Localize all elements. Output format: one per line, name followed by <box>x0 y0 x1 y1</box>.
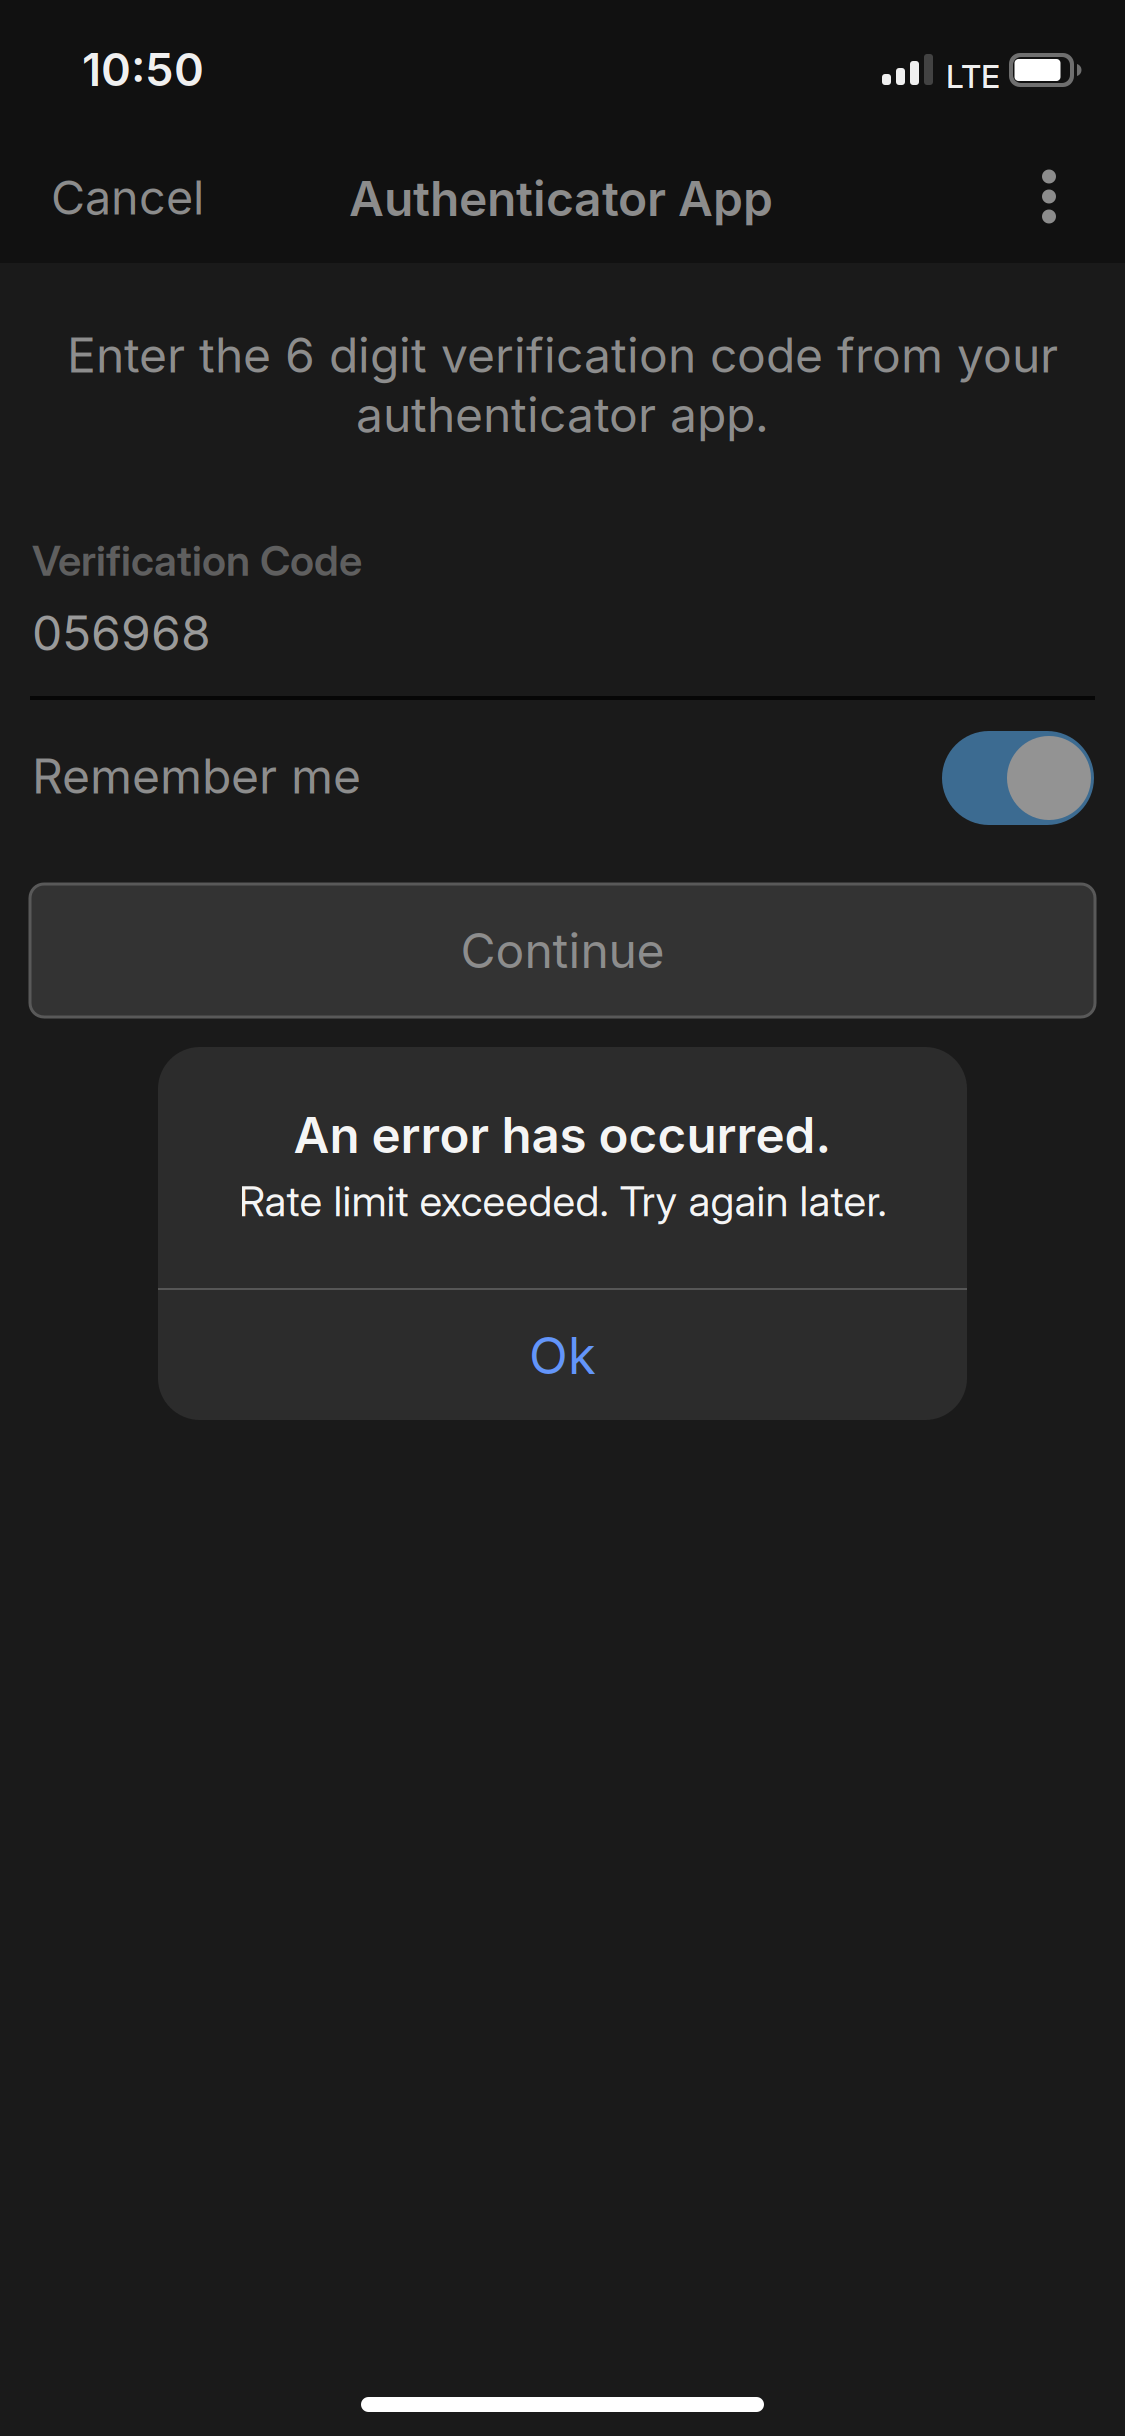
button[interactable]: Cancel <box>51 132 251 263</box>
staticText: Continue <box>460 921 664 980</box>
staticText: Authenticator App <box>349 169 773 228</box>
staticText: 10:50 <box>82 42 204 97</box>
staticText: 056968 <box>32 604 211 662</box>
staticText: Enter the 6 digit verification code from… <box>67 326 1058 384</box>
button[interactable]: Remember me <box>942 731 1094 825</box>
staticText: Ok <box>529 1325 596 1386</box>
staticText: Rate limit exceeded. Try again later. <box>238 1176 886 1226</box>
staticText: An error has occurred. <box>293 1105 831 1165</box>
button[interactable]: Continue <box>30 884 1095 1017</box>
staticText: LTE <box>946 57 1000 96</box>
button[interactable]: More options <box>1001 131 1097 262</box>
staticText: Remember me <box>32 747 361 805</box>
staticText: Cancel <box>51 169 204 226</box>
staticText: authenticator app. <box>356 386 769 444</box>
button[interactable]: Ok <box>158 1290 967 1421</box>
staticText: Verification Code <box>32 535 362 586</box>
